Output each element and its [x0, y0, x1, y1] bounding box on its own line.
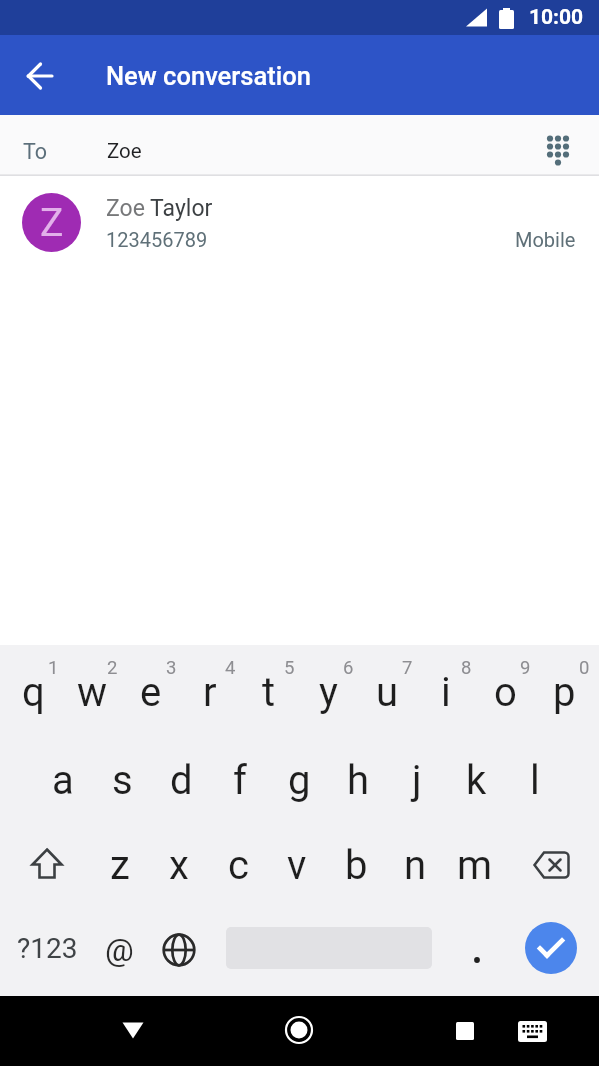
- staticText: w: [77, 669, 108, 716]
- staticText: To: [23, 139, 48, 164]
- button[interactable]: [16, 52, 64, 100]
- staticText: 9: [520, 657, 531, 679]
- button[interactable]: [17, 833, 77, 893]
- staticText: 4: [225, 657, 236, 679]
- button[interactable]: p: [535, 652, 593, 732]
- button[interactable]: [441, 1007, 489, 1055]
- staticText: 1: [48, 657, 59, 679]
- button[interactable]: o: [476, 652, 534, 732]
- staticText: f: [233, 757, 247, 804]
- staticText: 0: [579, 657, 590, 679]
- button[interactable]: @: [93, 925, 145, 975]
- button[interactable]: g: [270, 740, 328, 820]
- staticText: m: [457, 842, 493, 889]
- button[interactable]: c: [209, 825, 267, 905]
- button[interactable]: Z: [0, 176, 599, 268]
- staticText: 5: [284, 657, 295, 679]
- button[interactable]: k: [447, 740, 505, 820]
- button[interactable]: m: [446, 825, 504, 905]
- button[interactable]: q: [4, 652, 62, 732]
- staticText: b: [345, 842, 368, 889]
- button[interactable]: j: [388, 740, 446, 820]
- staticText: i: [441, 669, 451, 716]
- staticText: l: [530, 757, 540, 804]
- button[interactable]: u: [358, 652, 416, 732]
- staticText: n: [404, 842, 427, 889]
- button[interactable]: w: [63, 652, 121, 732]
- staticText: c: [228, 842, 249, 889]
- staticText: Z: [40, 200, 64, 246]
- button[interactable]: z: [91, 825, 149, 905]
- button[interactable]: i: [417, 652, 475, 732]
- button[interactable]: [462, 940, 492, 976]
- button[interactable]: [534, 126, 582, 174]
- button[interactable]: [275, 1006, 323, 1054]
- staticText: a: [52, 757, 74, 804]
- staticText: k: [466, 757, 487, 804]
- staticText: 123456789: [106, 228, 208, 251]
- button[interactable]: y: [299, 652, 357, 732]
- staticText: t: [262, 669, 276, 716]
- staticText: 2: [107, 657, 118, 679]
- staticText: Mobile: [515, 228, 576, 251]
- button[interactable]: [521, 835, 581, 895]
- button[interactable]: x: [150, 825, 208, 905]
- button[interactable]: ?123: [16, 923, 78, 973]
- staticText: u: [376, 669, 399, 716]
- staticText: q: [22, 669, 45, 716]
- staticText: 10:00: [529, 5, 584, 30]
- button[interactable]: a: [34, 740, 92, 820]
- button[interactable]: e: [122, 652, 180, 732]
- button[interactable]: [508, 1007, 556, 1055]
- button[interactable]: t: [240, 652, 298, 732]
- button[interactable]: h: [329, 740, 387, 820]
- button[interactable]: [153, 925, 205, 975]
- staticText: Zoe: [107, 139, 142, 163]
- staticText: 8: [461, 657, 472, 679]
- staticText: 6: [343, 657, 354, 679]
- button[interactable]: f: [211, 740, 269, 820]
- staticText: @: [105, 931, 134, 969]
- button[interactable]: [109, 1006, 157, 1054]
- staticText: New conversation: [106, 61, 311, 91]
- staticText: e: [140, 669, 162, 716]
- staticText: s: [112, 757, 133, 804]
- staticText: o: [494, 669, 517, 716]
- button[interactable]: d: [152, 740, 210, 820]
- button[interactable]: [525, 922, 577, 974]
- button[interactable]: r: [181, 652, 239, 732]
- button[interactable]: b: [327, 825, 385, 905]
- button[interactable]: l: [506, 740, 564, 820]
- button[interactable]: v: [268, 825, 326, 905]
- staticText: ?123: [17, 932, 78, 965]
- staticText: 3: [166, 657, 177, 679]
- button[interactable]: s: [93, 740, 151, 820]
- staticText: z: [110, 842, 130, 889]
- staticText: Zoe Taylor: [106, 195, 213, 222]
- staticText: v: [287, 842, 307, 889]
- staticText: x: [169, 842, 189, 889]
- staticText: y: [319, 669, 338, 716]
- staticText: j: [412, 757, 422, 804]
- staticText: r: [203, 669, 217, 716]
- staticText: 7: [402, 657, 413, 679]
- staticText: h: [347, 757, 370, 804]
- staticText: d: [170, 757, 193, 804]
- staticText: p: [553, 669, 576, 716]
- staticText: g: [288, 757, 311, 804]
- button[interactable]: n: [386, 825, 444, 905]
